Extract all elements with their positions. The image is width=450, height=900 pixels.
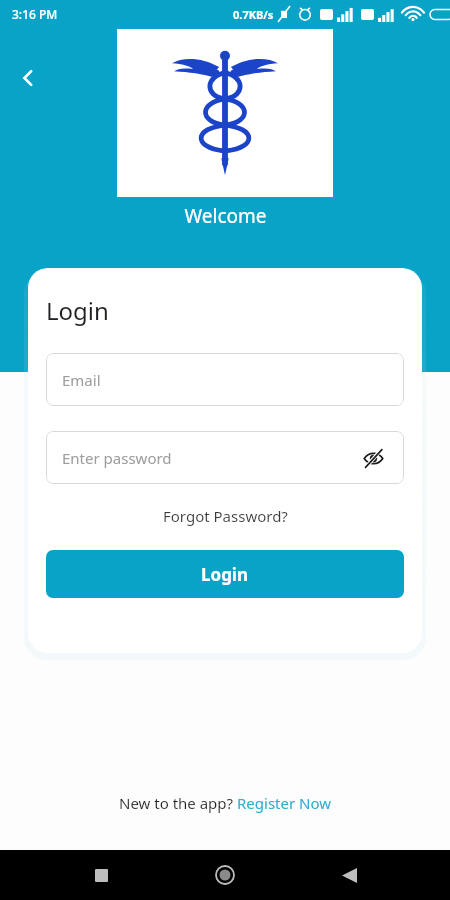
staticText: Forgot Password? — [163, 506, 288, 526]
staticText: Enter password — [62, 448, 172, 468]
button[interactable]: Enter password — [46, 431, 404, 484]
staticText: New to the app? — [119, 793, 237, 813]
staticText: Login — [201, 563, 249, 586]
button[interactable]: Register Now — [237, 793, 332, 813]
staticText: 0.7KB/s — [233, 7, 274, 22]
button[interactable]: Forgot Password? — [155, 502, 296, 530]
staticText: Login — [46, 294, 109, 327]
button[interactable]: Back — [326, 852, 372, 898]
button[interactable]: Show password — [358, 443, 388, 473]
button[interactable]: Email — [46, 353, 404, 406]
button[interactable]: Back — [8, 58, 48, 98]
staticText: 3:16 PM — [12, 6, 58, 22]
button[interactable]: Recents — [78, 852, 124, 898]
staticText: Email — [62, 370, 101, 390]
button[interactable]: Login — [46, 550, 404, 598]
staticText: Welcome — [184, 203, 267, 229]
button[interactable]: Home — [202, 852, 248, 898]
staticText: Register Now — [237, 793, 332, 813]
